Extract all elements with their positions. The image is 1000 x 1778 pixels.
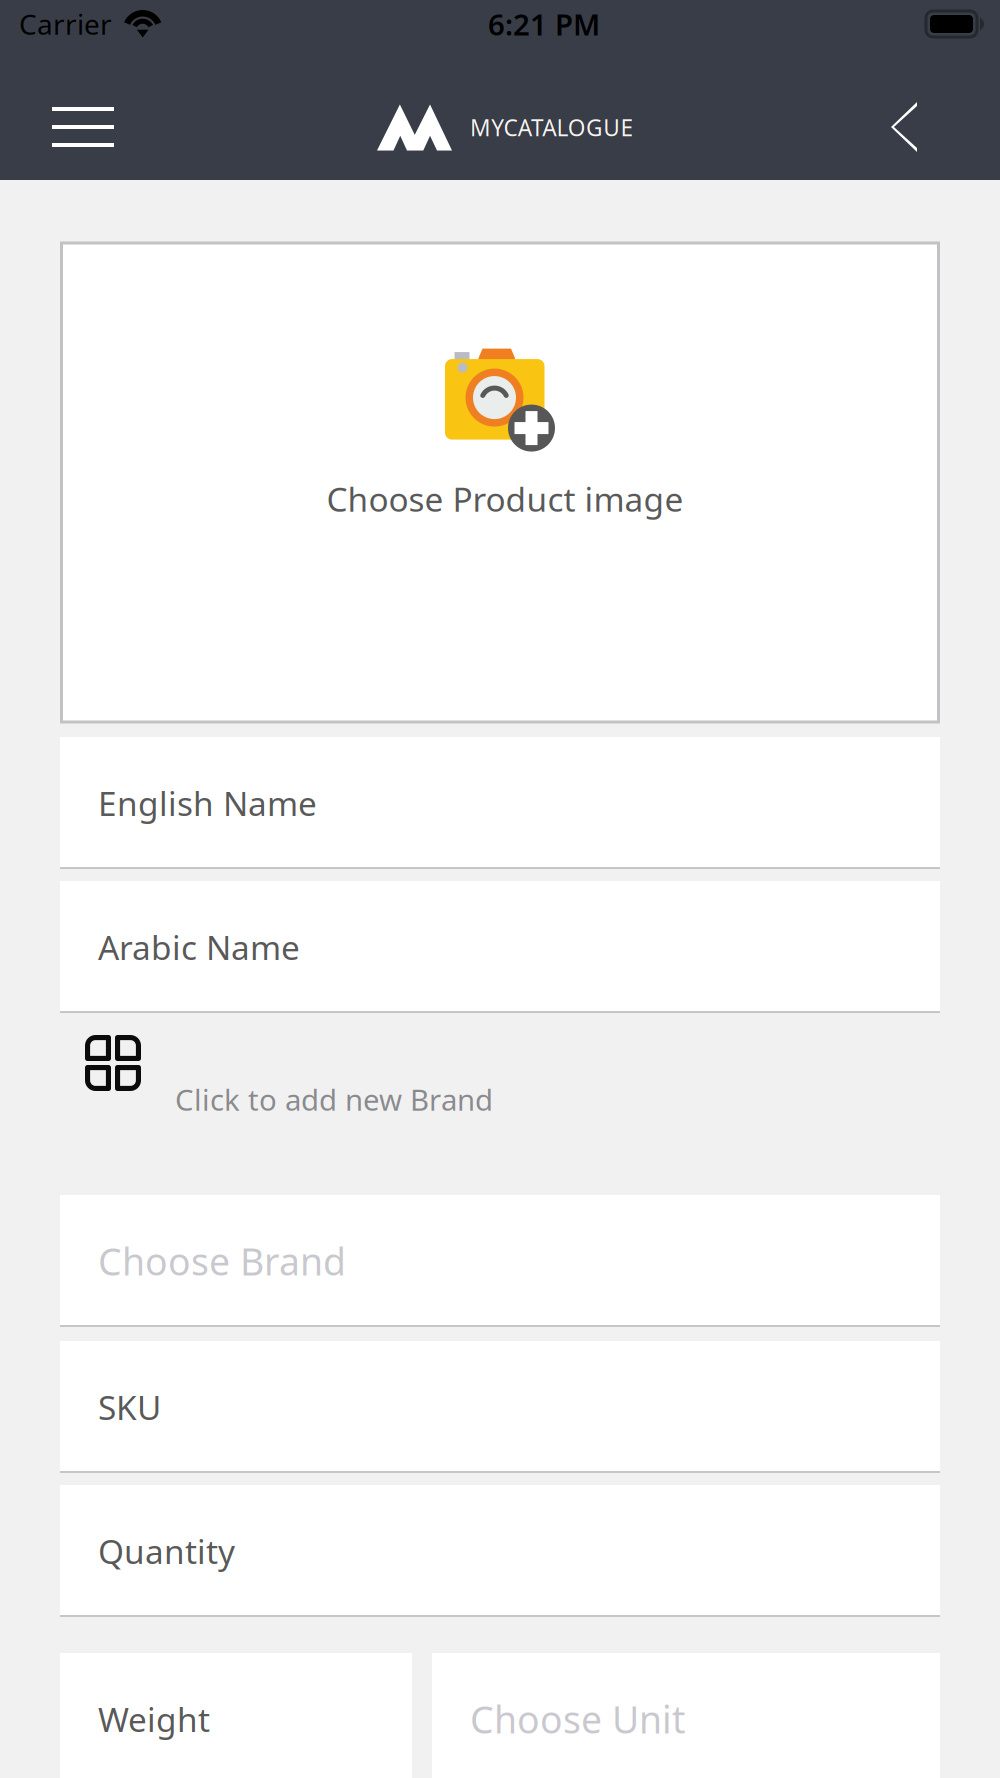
button[interactable]: Arabic Name [60, 881, 940, 1013]
button[interactable]: Weight [60, 1653, 412, 1778]
button[interactable]: Click to add new Brand [60, 1013, 940, 1195]
staticText: 6:21 PM [488, 4, 600, 43]
staticText: Choose Unit [470, 1694, 685, 1744]
button[interactable]: Quantity [60, 1485, 940, 1617]
button[interactable]: Choose Unit [432, 1653, 940, 1778]
button[interactable]: Back [861, 68, 1000, 160]
staticText: Arabic Name [98, 925, 300, 969]
staticText: Quantity [98, 1529, 235, 1573]
staticText: English Name [98, 781, 317, 825]
button[interactable]: English Name [60, 737, 940, 869]
staticText: Click to add new Brand [175, 1080, 493, 1119]
button[interactable]: Open menu [0, 68, 144, 160]
staticText: Weight [98, 1697, 210, 1741]
staticText: Choose Brand [98, 1236, 346, 1286]
staticText: MYCATALOGUE [470, 112, 633, 142]
staticText: SKU [98, 1385, 161, 1429]
staticText: Carrier [19, 5, 112, 43]
button[interactable]: SKU [60, 1341, 940, 1473]
staticText: Choose Product image [326, 477, 683, 521]
button[interactable]: Choose Product image [61, 243, 938, 722]
button[interactable]: Choose Brand [60, 1195, 940, 1327]
